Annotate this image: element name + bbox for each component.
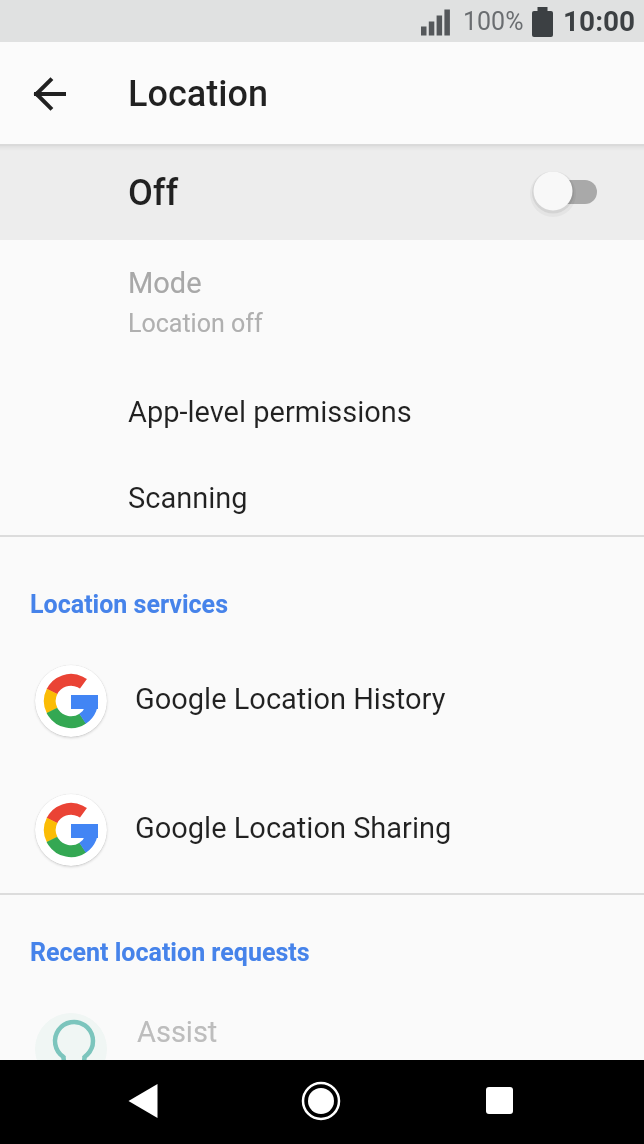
button[interactable] — [26, 70, 74, 118]
staticText: Off — [128, 172, 179, 214]
button[interactable]: App-level permissions — [0, 376, 644, 448]
button[interactable] — [115, 1073, 171, 1129]
staticText: Location — [128, 73, 269, 115]
staticText: Scanning — [128, 481, 248, 515]
button[interactable]: Google Location History — [0, 636, 644, 765]
staticText: 100% — [463, 7, 524, 36]
staticText: Google Location History — [135, 682, 446, 716]
button[interactable]: Google Location Sharing — [0, 765, 644, 894]
staticText: 10:00 — [563, 5, 636, 38]
button[interactable]: Off — [0, 146, 644, 240]
staticText: App-level permissions — [128, 395, 412, 429]
button[interactable] — [472, 1073, 528, 1129]
button[interactable]: Assist — [0, 982, 644, 1060]
button[interactable] — [293, 1073, 349, 1129]
staticText: Location services — [30, 590, 228, 619]
staticText: Google Location Sharing — [135, 811, 452, 845]
staticText: Mode — [128, 266, 202, 300]
button[interactable]: Scanning — [0, 462, 644, 534]
staticText: Assist — [137, 1015, 218, 1049]
staticText: Recent location requests — [30, 938, 310, 967]
staticText: Location off — [128, 309, 263, 338]
